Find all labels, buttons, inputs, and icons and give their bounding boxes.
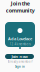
staticText: Ada Lovelace bbox=[8, 36, 32, 41]
staticText: Already a member? bbox=[7, 60, 32, 63]
staticText: 12.4k members bbox=[9, 42, 30, 46]
staticText: Sign in bbox=[15, 65, 25, 68]
staticText: Join the community bbox=[5, 0, 34, 14]
staticText: Join now bbox=[11, 54, 27, 59]
button[interactable]: Join now bbox=[5, 54, 34, 59]
